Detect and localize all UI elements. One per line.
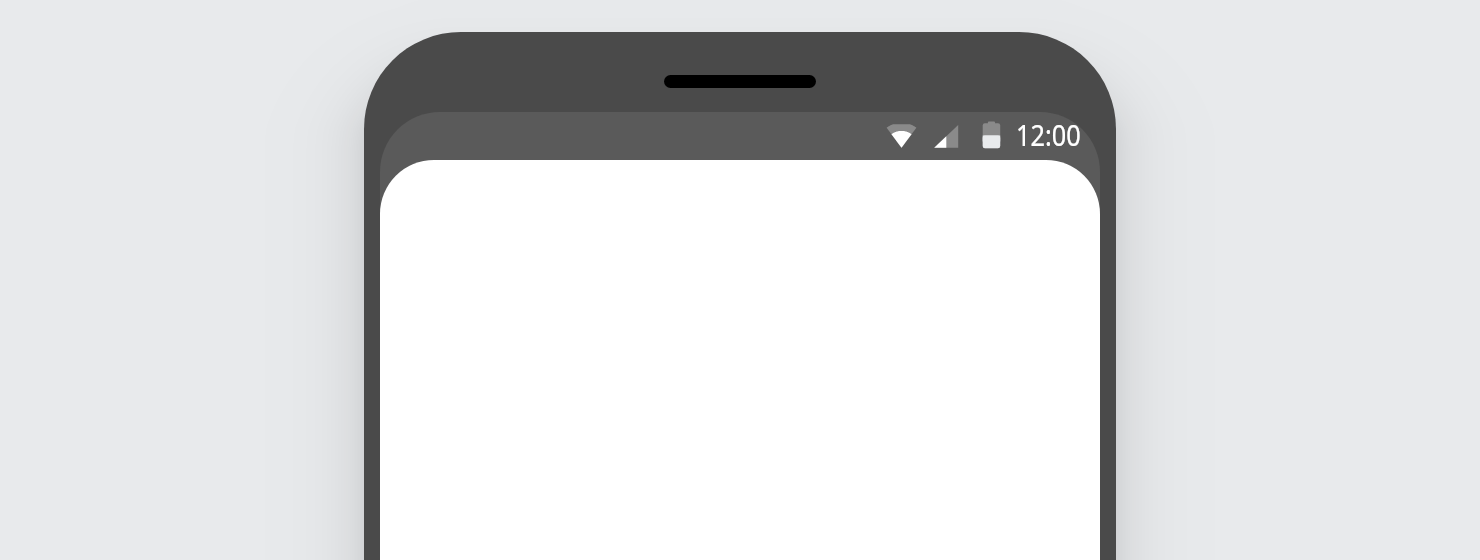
button[interactable]: Mobile signal strength [932, 122, 961, 150]
staticText: 12:00 [1016, 116, 1081, 155]
button[interactable]: Battery 50 percent [980, 119, 1003, 151]
button[interactable]: Wi-Fi signal [886, 122, 918, 150]
